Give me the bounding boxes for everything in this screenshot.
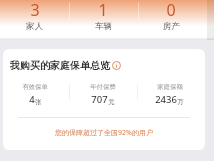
staticText: 年付保费 [90,83,116,91]
button[interactable]: 0 [137,0,205,31]
button[interactable]: 年付保费 [69,83,136,106]
staticText: 家人 [26,21,43,31]
staticText: 4 [29,93,35,106]
staticText: 我购买的家庭保单总览 [10,59,110,72]
staticText: 您的保障超过了全国92%的用户 [55,128,153,138]
staticText: 车辆 [95,21,112,31]
button[interactable]: 有效保单 [3,83,69,106]
button[interactable]: 1 [69,0,137,31]
staticText: 1 [98,0,108,21]
staticText: 707 [91,93,108,106]
button[interactable]: Info [112,61,121,70]
staticText: 有效保单 [22,83,48,91]
staticText: 张 [35,98,42,106]
staticText: 3 [30,0,40,21]
staticText: 元 [108,98,115,106]
button[interactable]: 3 [0,0,69,31]
staticText: 2436 [155,93,177,106]
button[interactable]: 家庭保额 [136,83,203,106]
staticText: 0 [166,0,176,21]
staticText: 家庭保额 [157,83,183,91]
staticText: 房产 [163,21,180,31]
staticText: 万 [177,98,184,106]
